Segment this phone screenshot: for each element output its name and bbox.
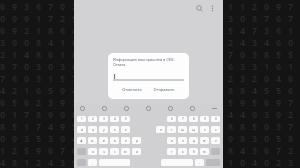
staticText: 5 [60,72,72,84]
button[interactable]: 7 [178,116,187,122]
button[interactable]: э [211,137,220,144]
staticText: 1 [84,132,96,144]
button[interactable]: Clipboard [121,103,132,114]
button[interactable]: ю [200,148,209,155]
button[interactable]: Emoji [99,103,110,114]
staticText: 5 [276,132,288,144]
button[interactable]: 8 [189,116,198,122]
button[interactable]: д [189,137,198,144]
button[interactable]: 2 [88,116,97,122]
staticText: 0 [60,132,72,144]
button[interactable]: й [77,126,86,133]
staticText: 0 [0,12,12,24]
button[interactable]: ж [200,137,209,144]
button[interactable]: у [99,126,108,133]
staticText: 0 [168,72,180,84]
staticText: 1 [216,132,228,144]
button[interactable]: х [211,126,220,133]
staticText: 5 [132,132,144,144]
staticText: 4 [114,117,116,121]
button[interactable]: 4 [110,116,119,122]
button[interactable]: Отправить [150,86,178,93]
button[interactable]: ц [88,126,97,133]
button[interactable]: б [189,148,198,155]
button[interactable]: More [209,103,220,114]
staticText: 0 [24,60,36,72]
staticText: 8 [216,120,228,132]
button[interactable]: м [121,148,130,155]
button[interactable]: щ [189,126,198,133]
button[interactable]: , [88,159,97,166]
staticText: 7 [228,48,240,60]
button[interactable]: 9 [200,116,209,122]
button[interactable]: ч [99,148,108,155]
button[interactable]: 3 [99,116,108,122]
staticText: 2 [12,144,24,156]
button[interactable]: з [200,126,209,133]
button[interactable]: Theme [187,103,198,114]
button[interactable]: ы [88,137,97,144]
button[interactable]: а [110,137,119,144]
button[interactable]: ш [178,126,187,133]
staticText: 7 [48,0,60,12]
button[interactable]: н [156,126,165,133]
staticText: 6 [12,72,24,84]
button[interactable]: р [132,137,141,144]
staticText: 1 [60,36,72,48]
staticText: к [114,128,116,132]
button[interactable]: 6 [167,116,176,122]
button[interactable]: я [88,148,97,155]
button[interactable]: л [178,137,187,144]
button[interactable]: 0 [211,116,220,122]
button[interactable]: е [121,126,130,133]
staticText: 0 [12,36,24,48]
staticText: 6 [276,12,288,24]
staticText: 4 [0,84,12,96]
button[interactable]: Settings [143,103,154,114]
staticText: ж [203,139,206,143]
button[interactable]: More options [206,2,219,15]
staticText: 1 [60,48,72,60]
staticText: 4 [252,156,264,168]
button[interactable]: г [167,126,176,133]
button[interactable]: в [99,137,108,144]
button[interactable]: о [167,137,176,144]
button[interactable]: к [110,126,119,133]
button[interactable]: и [132,148,141,155]
button[interactable]: п [121,137,130,144]
staticText: 9 [276,96,288,108]
button[interactable]: . [195,159,204,166]
button[interactable]: Search [193,2,206,15]
staticText: 7 [288,120,300,132]
button[interactable]: Sticker [77,103,88,114]
staticText: 5 [72,12,84,24]
staticText: 4 [72,132,84,144]
staticText: е [125,128,127,132]
button[interactable]: ф [77,137,86,144]
button[interactable]: т [167,148,176,155]
staticText: 3 [108,108,120,120]
staticText: 6 [60,24,72,36]
button[interactable]: ь [178,148,187,155]
button[interactable]: 1 [77,116,86,122]
button[interactable]: Отменить [119,86,145,93]
staticText: 4 [24,48,36,60]
button[interactable]: Translate [165,103,176,114]
staticText: Информацию вам пришлём в СМС. [113,57,175,62]
button[interactable]: с [110,148,119,155]
staticText: и [136,150,138,154]
staticText: 5 [48,84,60,96]
button[interactable]: 5 [121,116,130,122]
